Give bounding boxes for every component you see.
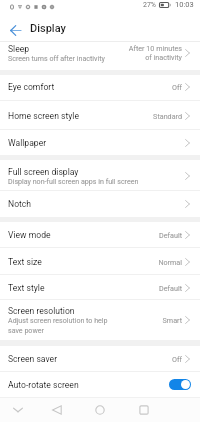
button[interactable]: Screen resolution <box>0 300 200 340</box>
staticText: Sleep <box>8 44 30 54</box>
staticText: Default <box>159 231 182 239</box>
button[interactable]: Notch <box>0 191 200 217</box>
button[interactable]: Text size <box>0 248 200 275</box>
staticText: Home screen style <box>8 111 79 121</box>
staticText: Display non-full screen apps in full scr… <box>8 177 139 185</box>
staticText: Eye comfort <box>8 82 55 92</box>
button[interactable]: Text style <box>0 275 200 300</box>
staticText: 27% <box>143 1 156 9</box>
staticText: Off <box>172 355 182 363</box>
staticText: Display <box>30 22 66 35</box>
button[interactable]: View mode <box>0 222 200 248</box>
staticText: Full screen display <box>8 167 79 177</box>
staticText: Default <box>159 284 182 292</box>
staticText: Screen saver <box>8 354 58 364</box>
button[interactable]: Eye comfort <box>0 75 200 101</box>
staticText: Notch <box>8 199 32 209</box>
staticText: View mode <box>8 230 51 240</box>
staticText: Standard <box>153 112 182 120</box>
button[interactable]: Back <box>0 14 26 42</box>
button[interactable]: Home screen style <box>0 101 200 130</box>
button[interactable]: Full screen display <box>0 160 200 191</box>
staticText: 10:03 <box>175 0 194 9</box>
staticText: After 10 minutes of inactivity <box>128 44 182 62</box>
button[interactable]: Recent apps <box>131 397 157 422</box>
staticText: Off <box>172 83 182 91</box>
button[interactable]: Auto-rotate screen <box>0 372 200 397</box>
staticText: Text style <box>8 283 45 293</box>
staticText: Screen turns off after inactivity <box>8 54 105 62</box>
staticText: Auto-rotate screen <box>8 380 169 390</box>
staticText: Wallpaper <box>8 138 47 148</box>
staticText: Screen resolution <box>8 306 75 316</box>
staticText: Smart <box>162 316 182 324</box>
button[interactable]: Wallpaper <box>0 130 200 155</box>
button[interactable]: Hide keyboard <box>5 397 31 422</box>
staticText: Text size <box>8 257 42 267</box>
button[interactable]: Home <box>87 397 113 422</box>
button[interactable]: Screen saver <box>0 346 200 372</box>
staticText: Adjust screen resolution to help save po… <box>8 316 108 334</box>
staticText: Normal <box>158 258 182 266</box>
button[interactable]: Sleep <box>0 42 200 70</box>
button[interactable]: Back <box>44 397 70 422</box>
